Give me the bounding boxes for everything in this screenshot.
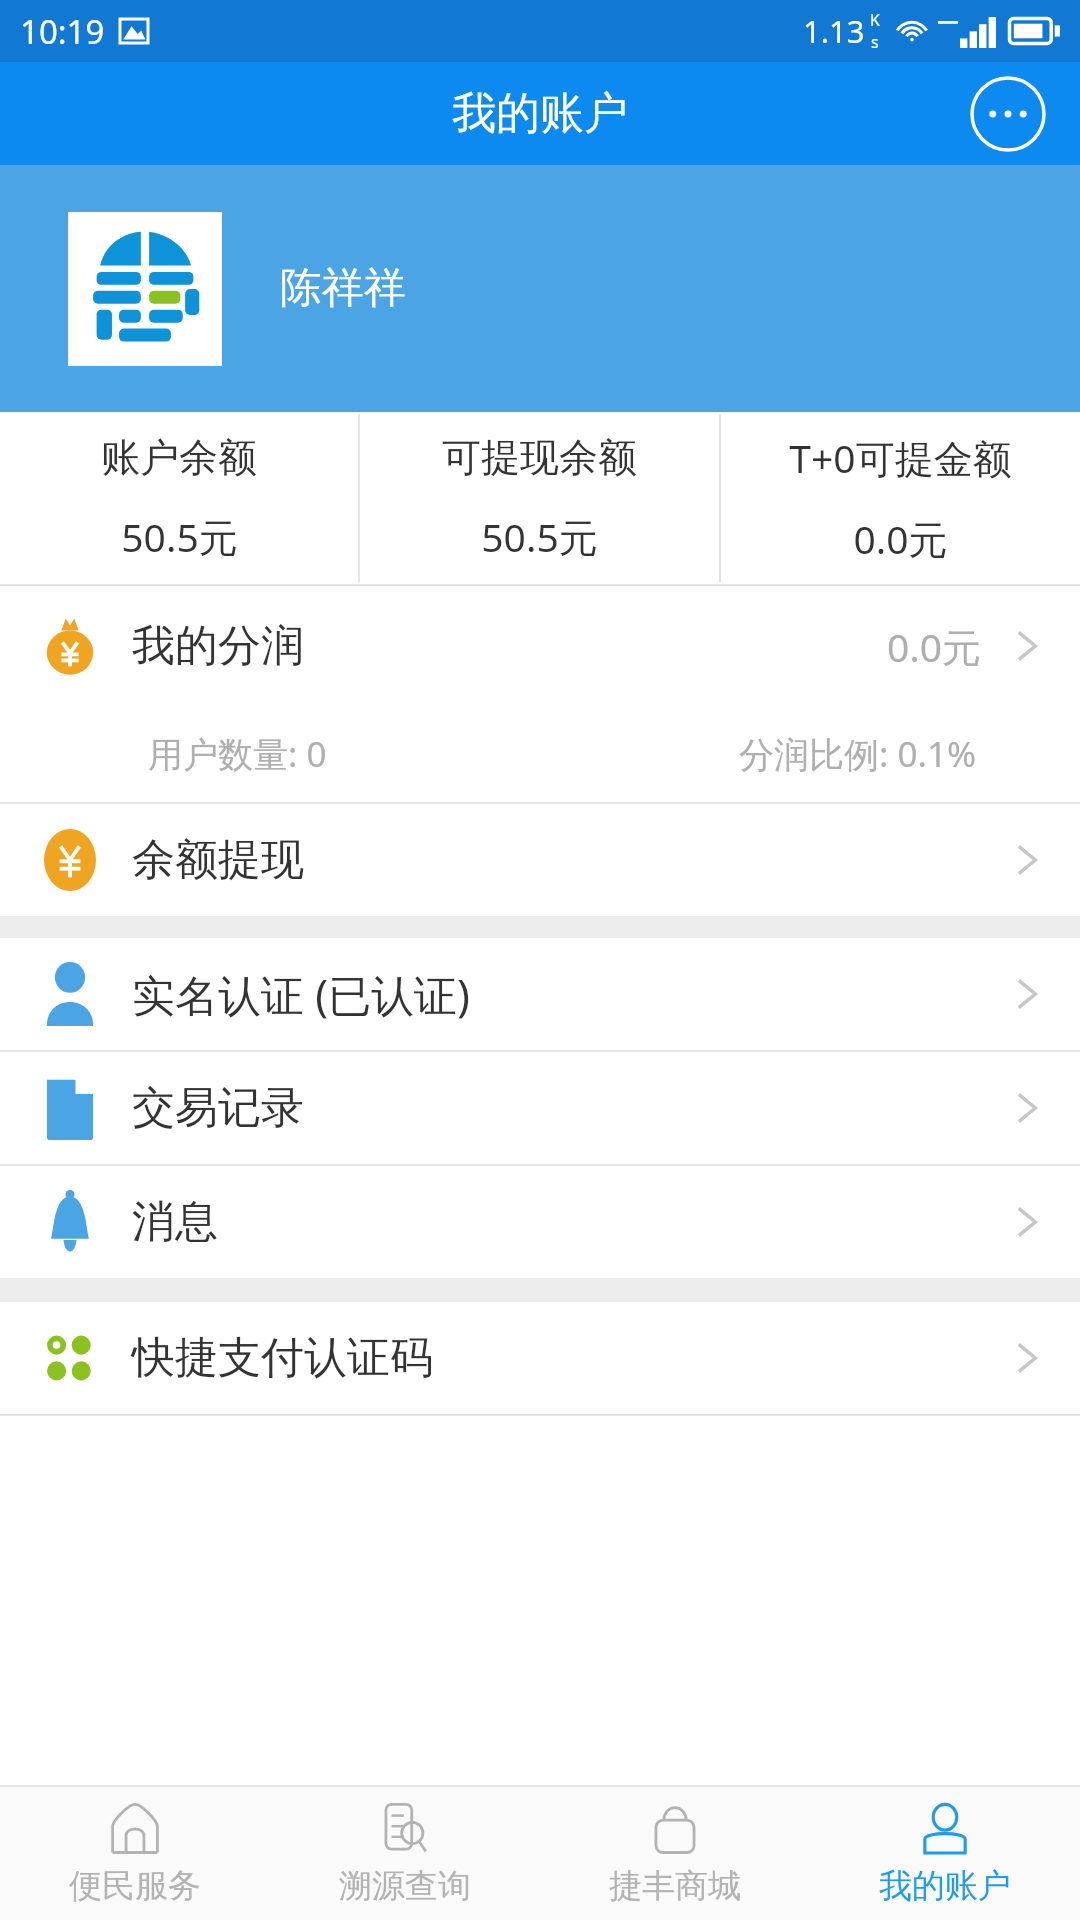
button[interactable]: 交易记录 <box>0 1052 1080 1164</box>
button[interactable]: 实名认证 (已认证) <box>0 938 1080 1050</box>
button[interactable]: 余额提现 <box>0 804 1080 916</box>
staticText: 50.5元 <box>481 510 598 563</box>
staticText: 实名认证 (已认证) <box>132 965 470 1024</box>
staticText: 10:19 <box>20 9 105 54</box>
staticText: 可提现余额 <box>442 433 637 482</box>
staticText: 陈祥祥 <box>280 262 406 315</box>
staticText: 消息 <box>132 1195 218 1249</box>
button[interactable]: 我的分润 <box>0 586 1080 802</box>
staticText: 快捷支付认证码 <box>132 1331 433 1385</box>
button[interactable]: T+0可提金额 <box>721 412 1080 584</box>
staticText: 分润比例: 0.1% <box>739 730 976 778</box>
staticText: 1.13 <box>803 10 865 52</box>
staticText: s <box>871 31 879 53</box>
button[interactable]: 便民服务 <box>0 1787 270 1920</box>
staticText: 0.0元 <box>887 620 982 673</box>
button[interactable]: 捷丰商城 <box>540 1787 810 1920</box>
button[interactable]: 消息 <box>0 1166 1080 1278</box>
staticText: 余额提现 <box>132 833 304 887</box>
button[interactable]: 可提现余额 <box>360 412 719 584</box>
staticText: 我的账户 <box>452 86 628 141</box>
staticText: T+0可提金额 <box>789 431 1012 484</box>
staticText: 我的分润 <box>132 619 304 673</box>
staticText: 交易记录 <box>132 1081 304 1135</box>
staticText: 我的账户 <box>879 1865 1011 1907</box>
button[interactable]: More options <box>970 76 1046 152</box>
button[interactable]: 陈祥祥 <box>0 165 1080 412</box>
staticText: 捷丰商城 <box>609 1865 741 1907</box>
button[interactable]: 我的账户 <box>810 1787 1080 1920</box>
staticText: K <box>870 9 880 31</box>
button[interactable]: 账户余额 <box>0 412 358 584</box>
staticText: 0.0元 <box>853 512 948 565</box>
button[interactable]: 溯源查询 <box>270 1787 540 1920</box>
staticText: 溯源查询 <box>339 1865 471 1907</box>
staticText: 账户余额 <box>101 433 257 482</box>
staticText: 50.5元 <box>121 510 238 563</box>
staticText: 便民服务 <box>69 1865 201 1907</box>
staticText: 用户数量: 0 <box>148 730 327 778</box>
button[interactable]: 快捷支付认证码 <box>0 1302 1080 1414</box>
